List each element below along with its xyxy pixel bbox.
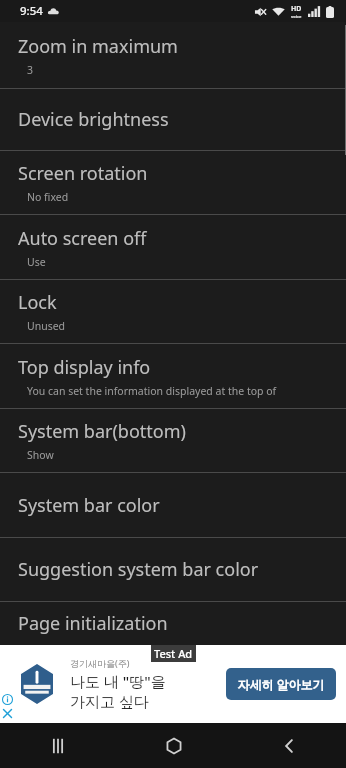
- button[interactable]: System bar color: [0, 473, 346, 537]
- staticText: Top display info: [18, 355, 151, 380]
- button[interactable]: Suggestion system bar color: [0, 538, 346, 601]
- staticText: System bar color: [18, 493, 160, 518]
- staticText: Zoom in maximum: [18, 34, 178, 59]
- button[interactable]: Lock: [0, 280, 346, 343]
- button[interactable]: Ad info: [2, 694, 13, 705]
- staticText: 경기새마을(주): [70, 657, 130, 669]
- staticText: Use: [27, 255, 46, 269]
- button[interactable]: 자세히 알아보기: [226, 668, 336, 700]
- staticText: System bar(bottom): [18, 419, 186, 444]
- button[interactable]: Device brightness: [0, 89, 346, 150]
- staticText: 자세히 알아보기: [237, 676, 325, 692]
- staticText: 9:54: [20, 3, 43, 19]
- button[interactable]: Back: [231, 723, 346, 768]
- staticText: You can set the information displayed at…: [27, 384, 277, 398]
- staticText: Unused: [27, 319, 66, 333]
- staticText: 3: [27, 63, 34, 77]
- staticText: No fixed: [27, 190, 69, 204]
- staticText: Device brightness: [18, 107, 169, 132]
- staticText: 가지고 싶다: [70, 691, 149, 711]
- button[interactable]: Recents: [0, 723, 116, 768]
- staticText: Lock: [18, 290, 57, 315]
- staticText: Page initialization: [18, 611, 168, 636]
- staticText: voice: [291, 14, 302, 19]
- staticText: Suggestion system bar color: [18, 557, 259, 582]
- button[interactable]: 경기새마을(주): [0, 645, 346, 723]
- button[interactable]: Page initialization: [0, 602, 346, 645]
- staticText: 나도 내 "땅"을: [70, 671, 166, 691]
- button[interactable]: Zoom in maximum: [0, 22, 346, 88]
- button[interactable]: Close ad: [2, 708, 13, 719]
- button[interactable]: Auto screen off: [0, 215, 346, 279]
- staticText: HD: [291, 4, 302, 14]
- staticText: Screen rotation: [18, 161, 148, 186]
- staticText: Show: [27, 448, 54, 462]
- button[interactable]: Home: [116, 723, 231, 768]
- staticText: Auto screen off: [18, 226, 147, 251]
- button[interactable]: Top display info: [0, 344, 346, 408]
- staticText: Test Ad: [154, 646, 193, 661]
- button[interactable]: System bar(bottom): [0, 409, 346, 472]
- button[interactable]: Screen rotation: [0, 151, 346, 214]
